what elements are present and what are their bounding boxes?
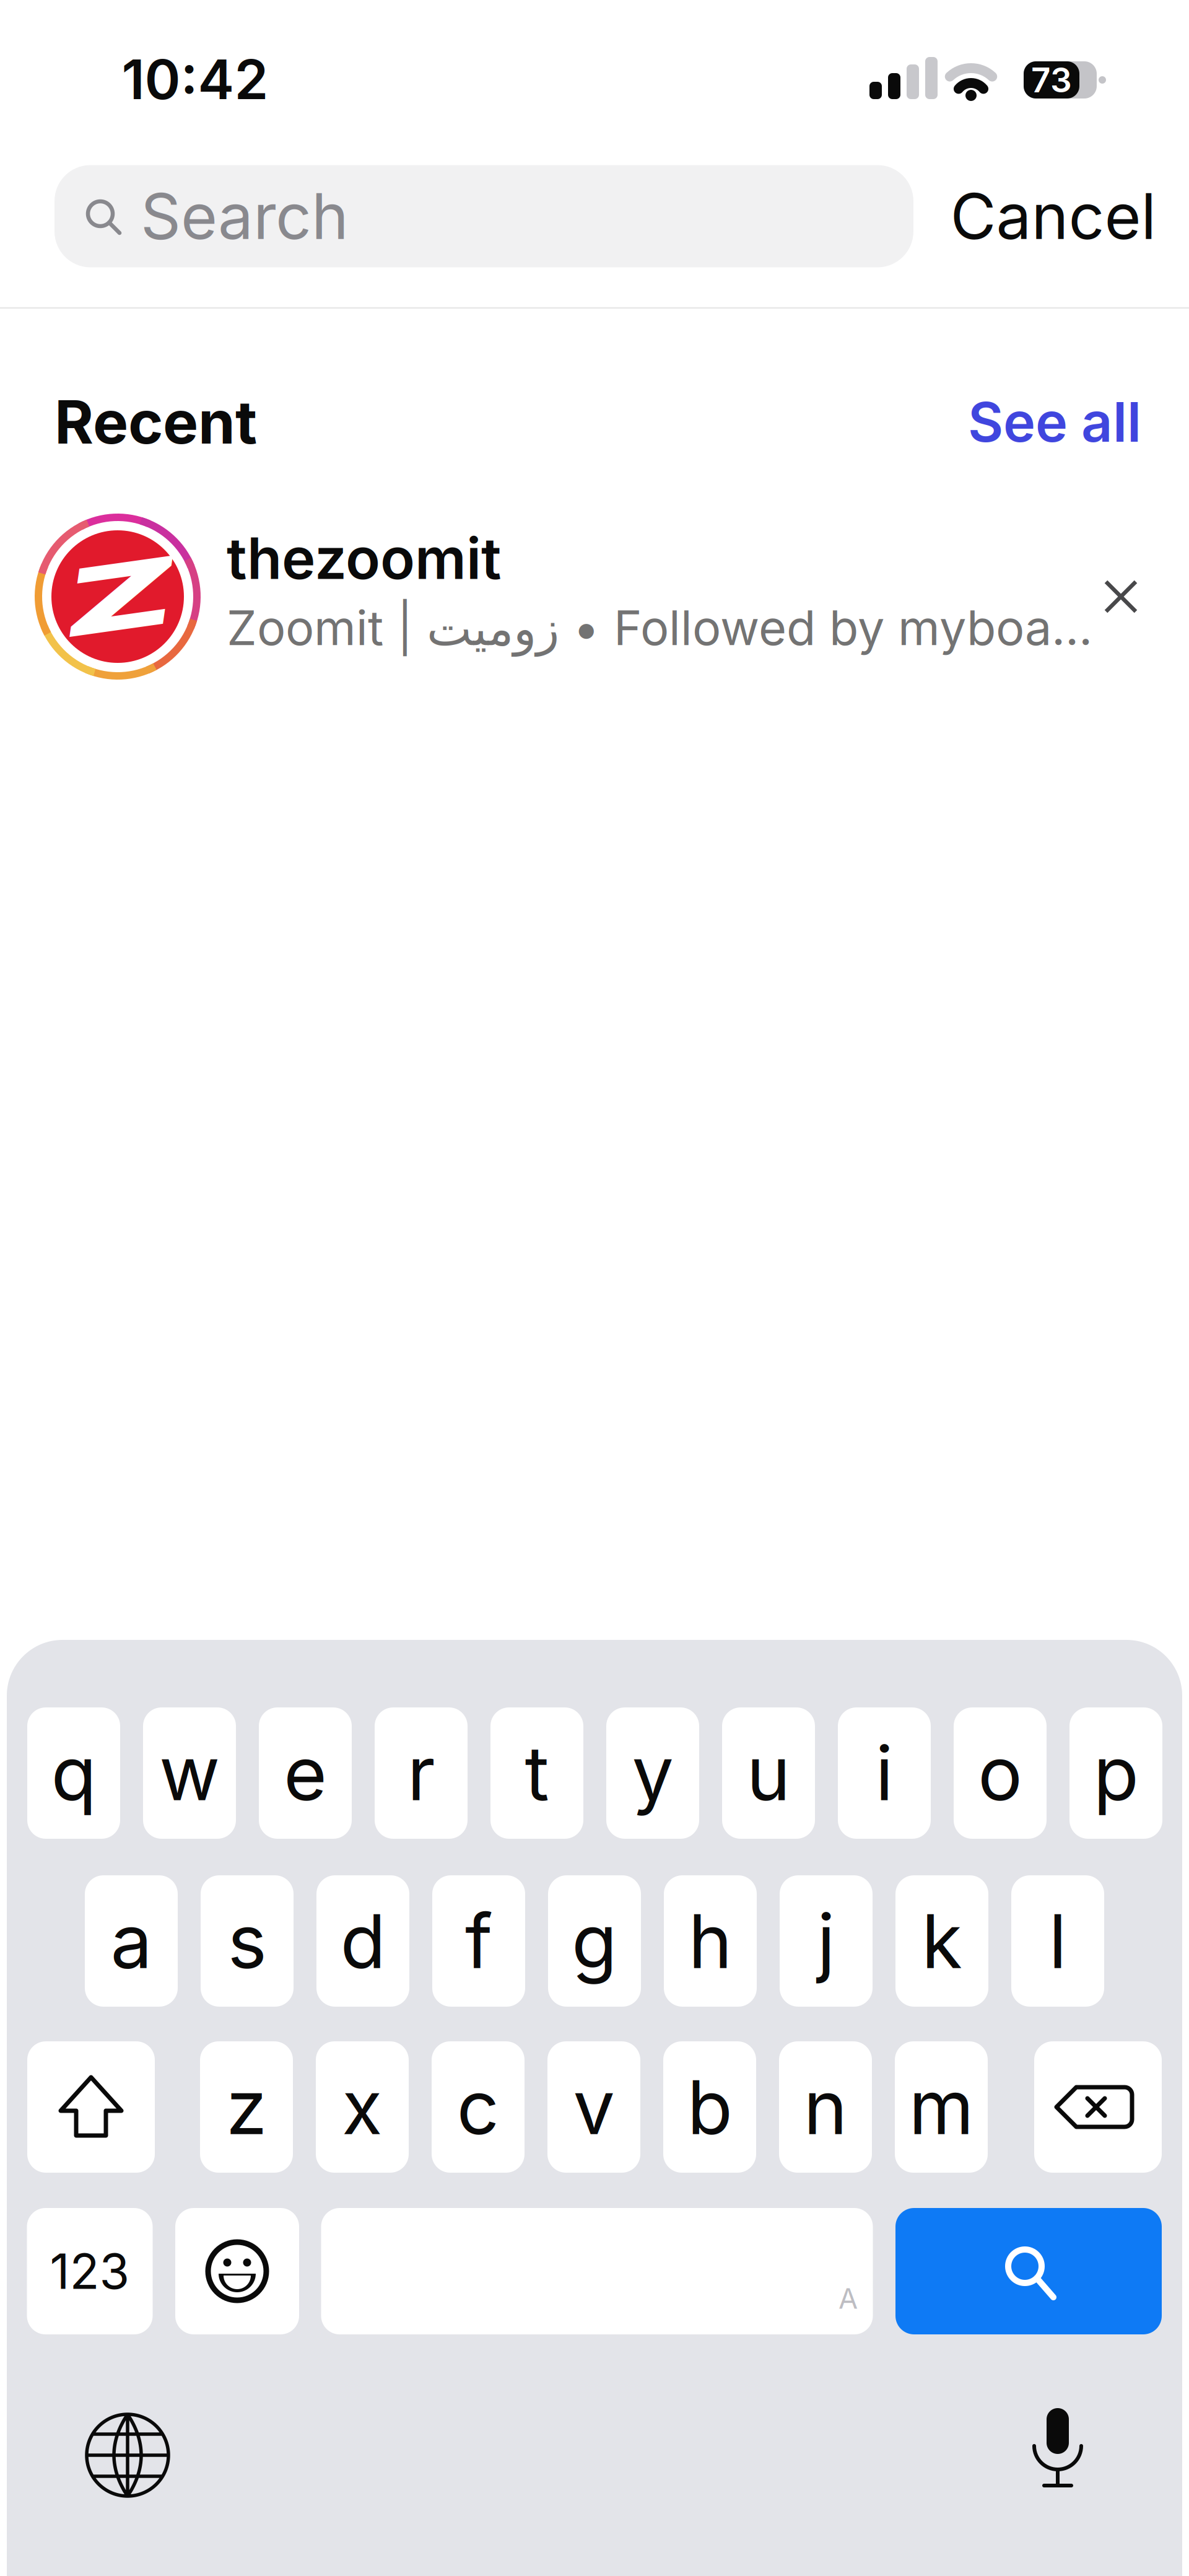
staticText: w (159, 1729, 220, 1817)
staticText: n (804, 2063, 847, 2151)
button[interactable]: t (490, 1707, 583, 1839)
staticText: v (573, 2063, 615, 2151)
staticText: u (747, 1729, 790, 1817)
button[interactable]: y (606, 1707, 699, 1839)
button[interactable]: c (432, 2041, 525, 2173)
staticText: f (465, 1897, 492, 1985)
staticText: a (111, 1897, 152, 1985)
button[interactable]: Search (895, 2208, 1162, 2334)
button[interactable]: u (722, 1707, 815, 1839)
staticText: r (407, 1729, 435, 1817)
button[interactable]: w (143, 1707, 236, 1839)
staticText: l (1049, 1897, 1067, 1985)
button[interactable]: a (85, 1875, 178, 2007)
staticText: e (284, 1729, 327, 1817)
button[interactable]: z (200, 2041, 293, 2173)
button[interactable]: Numbers (27, 2208, 153, 2334)
staticText: Search (141, 179, 349, 253)
button[interactable]: Shift (27, 2041, 155, 2173)
button[interactable]: g (548, 1875, 641, 2007)
staticText: x (342, 2063, 383, 2151)
staticText: y (632, 1729, 673, 1817)
button[interactable]: Dictate (1021, 2399, 1095, 2498)
staticText: d (340, 1897, 385, 1985)
staticText: Z (87, 543, 150, 650)
button[interactable]: s (201, 1875, 294, 2007)
button[interactable]: Next keyboard (78, 2406, 177, 2505)
button[interactable]: Delete (1034, 2041, 1162, 2173)
staticText: thezoomit (227, 525, 501, 592)
button[interactable]: x (316, 2041, 409, 2173)
button[interactable]: l (1011, 1875, 1104, 2007)
button[interactable]: v (547, 2041, 640, 2173)
button[interactable]: p (1069, 1707, 1162, 1839)
staticText: 123 (50, 2242, 130, 2300)
staticText: 73 (1031, 60, 1072, 100)
staticText: i (875, 1729, 893, 1817)
staticText: Cancel (950, 179, 1156, 253)
button[interactable]: k (895, 1875, 988, 2007)
button[interactable]: Remove (1087, 563, 1154, 630)
button[interactable]: d (316, 1875, 409, 2007)
button[interactable]: e (259, 1707, 352, 1839)
button[interactable]: n (779, 2041, 872, 2173)
staticText: o (978, 1729, 1022, 1817)
staticText: m (909, 2063, 974, 2151)
staticText: 10:42 (122, 47, 268, 111)
staticText: t (525, 1729, 549, 1817)
button[interactable]: Search (54, 165, 913, 267)
staticText: Zoomit | زوميت • Followed by myboa... (227, 599, 1092, 656)
button[interactable]: Z (0, 507, 1189, 686)
button[interactable]: h (664, 1875, 757, 2007)
button[interactable]: Space (321, 2208, 873, 2334)
button[interactable]: See all (881, 388, 1141, 456)
button[interactable]: Emoji (175, 2208, 299, 2334)
button[interactable]: b (663, 2041, 756, 2173)
button[interactable]: o (954, 1707, 1047, 1839)
staticText: A (838, 2282, 858, 2315)
staticText: q (51, 1729, 96, 1817)
button[interactable]: r (375, 1707, 468, 1839)
button[interactable]: q (27, 1707, 120, 1839)
button[interactable]: i (838, 1707, 931, 1839)
button[interactable]: Cancel (911, 173, 1189, 260)
staticText: k (921, 1897, 962, 1985)
staticText: See all (968, 390, 1141, 454)
staticText: h (688, 1897, 732, 1985)
staticText: g (572, 1897, 617, 1985)
button[interactable]: f (432, 1875, 525, 2007)
staticText: c (457, 2063, 499, 2151)
button[interactable]: m (895, 2041, 988, 2173)
staticText: Recent (54, 387, 257, 457)
button[interactable]: j (780, 1875, 873, 2007)
staticText: s (228, 1897, 267, 1985)
staticText: b (687, 2063, 732, 2151)
staticText: j (817, 1897, 835, 1985)
staticText: p (1093, 1729, 1139, 1817)
staticText: z (226, 2063, 267, 2151)
